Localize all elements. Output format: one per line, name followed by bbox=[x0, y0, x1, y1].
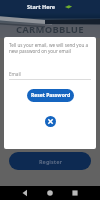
button[interactable]: Reset Password bbox=[27, 89, 74, 102]
button[interactable]: Close bbox=[45, 116, 56, 127]
button[interactable]: Register bbox=[9, 152, 91, 170]
staticText: Start Here bbox=[27, 3, 56, 10]
staticText: Tell us your email, we will send you a n… bbox=[9, 42, 91, 54]
staticText: Email bbox=[9, 71, 21, 77]
staticText: Register bbox=[39, 158, 62, 165]
staticText: CARMOBBLUE bbox=[16, 23, 84, 36]
staticText: Reset Password bbox=[31, 92, 71, 99]
